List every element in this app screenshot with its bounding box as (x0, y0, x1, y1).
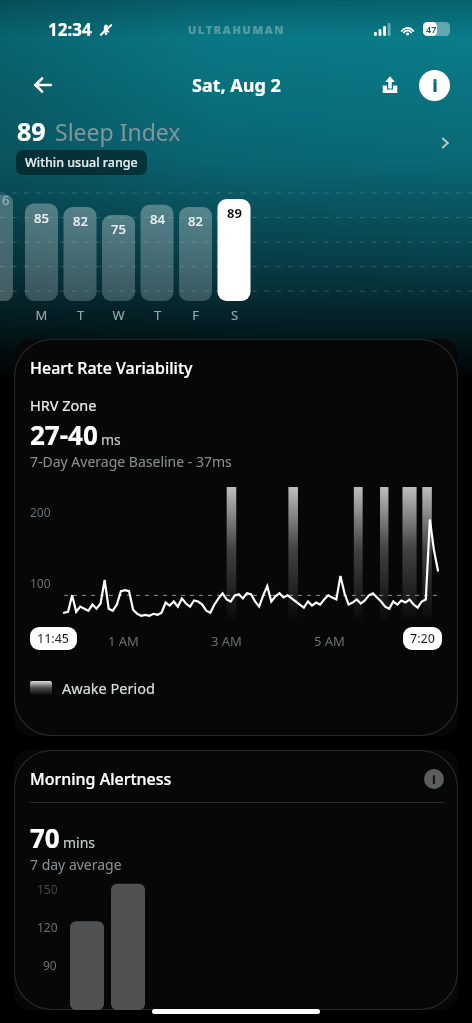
staticText: 75 (102, 220, 135, 238)
staticText: 70 (30, 820, 60, 855)
staticText: F (179, 306, 212, 324)
staticText: 120 (37, 919, 58, 935)
staticText: 3 AM (211, 632, 242, 650)
staticText: mins (63, 833, 96, 852)
button[interactable]: Info (424, 769, 444, 789)
staticText: i (432, 74, 438, 97)
staticText: 7-Day Average Baseline - 37ms (30, 452, 232, 471)
staticText: Sleep Index (55, 116, 181, 147)
staticText: Morning Alertness (30, 768, 172, 790)
staticText: 11:45 (37, 630, 70, 647)
staticText: 100 (30, 575, 51, 591)
staticText: T (64, 306, 97, 324)
button[interactable]: Info (419, 70, 450, 101)
staticText: 84 (141, 210, 174, 228)
staticText: 89 (218, 204, 251, 222)
staticText: 27-40 (30, 417, 98, 452)
staticText: 150 (37, 881, 58, 897)
staticText: ULTRAHUMAN (188, 22, 285, 37)
staticText: HRV Zone (30, 395, 97, 415)
staticText: ms (101, 430, 121, 449)
staticText: Within usual range (25, 154, 138, 171)
staticText: 5 AM (314, 632, 345, 650)
staticText: 200 (30, 504, 51, 520)
staticText: T (141, 306, 174, 324)
staticText: Heart Rate Variability (30, 357, 193, 379)
staticText: 6 (2, 191, 10, 209)
staticText: 7:20 (410, 630, 435, 647)
button[interactable]: Heart Rate Variability (14, 339, 458, 736)
button[interactable]: Within usual range (16, 150, 147, 175)
button[interactable]: Morning Alertness (14, 750, 458, 1010)
staticText: 89 (17, 114, 46, 148)
staticText: Sat, Aug 2 (192, 73, 281, 98)
staticText: 12:34 (48, 18, 92, 41)
staticText: 82 (64, 212, 97, 230)
staticText: 85 (25, 209, 58, 227)
staticText: i (432, 771, 436, 787)
staticText: 47 (426, 23, 437, 35)
staticText: 82 (179, 212, 212, 230)
staticText: S (218, 306, 251, 324)
staticText: Awake Period (62, 678, 155, 698)
button[interactable]: Share (373, 68, 407, 102)
staticText: 7 day average (30, 855, 122, 874)
staticText: 90 (43, 957, 57, 973)
staticText: W (102, 306, 135, 324)
button[interactable]: Back (24, 66, 62, 104)
staticText: 1 AM (108, 632, 139, 650)
staticText: M (25, 306, 58, 324)
